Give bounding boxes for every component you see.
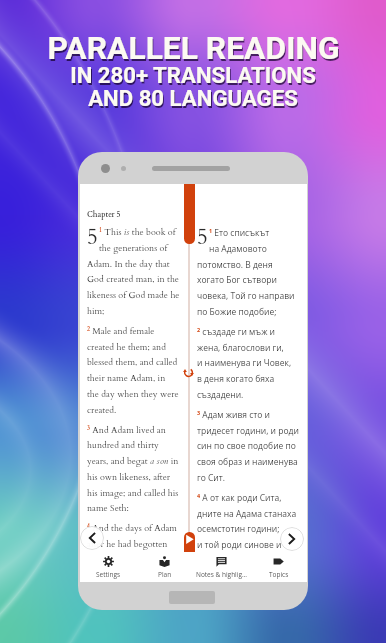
staticText: years, and begat a son in [87,455,179,467]
staticText: Adam. In the day that [87,258,170,270]
staticText: after he had begotten [87,538,168,550]
staticText: Topics [269,570,289,579]
staticText: човека, Той го направи [197,290,295,302]
staticText: и наименува ги Човек, [197,357,292,369]
staticText: Settings [96,570,121,579]
staticText: IN 280+ TRANSLATIONS [71,64,317,90]
staticText: his image; and called his [87,487,179,499]
staticText: his own likeness, after [87,471,171,483]
button[interactable]: Plan [136,552,193,582]
staticText: син по свое подобие по [197,440,296,452]
staticText: 1 This is the book of [99,226,176,238]
button[interactable]: Notes & highlig... [193,552,250,582]
staticText: 3 Адам живя сто и [197,409,270,421]
staticText: 5 [197,223,208,251]
button[interactable]: Next translation [184,532,195,553]
staticText: likeness of God made he [87,289,180,301]
staticText: 4 А от как роди Сита, [197,492,282,504]
button[interactable]: Settings [80,552,136,582]
staticText: по Божие подобие; [197,306,277,318]
staticText: осемстотин години; [197,523,280,535]
staticText: PARALLEL READING [48,31,341,68]
staticText: the generations of [99,242,168,254]
staticText: в деня когато бяха [197,373,275,385]
staticText: God created man, in the [87,273,179,285]
staticText: 4 And the days of Adam [87,522,177,534]
staticText: the day when they were [87,388,179,400]
staticText: PARALLEL READING [47,29,340,66]
staticText: 2 създаде ги мъж и [197,326,276,338]
staticText: дните на Адама станаха [197,508,297,520]
staticText: своя образ и наименува [197,456,298,468]
staticText: created he them; and [87,341,166,353]
staticText: hundred and thirty [87,439,159,451]
staticText: Notes & highlig... [196,570,248,579]
staticText: AND 80 LANGUAGES [89,87,299,113]
button[interactable]: Previous chapter [80,526,104,550]
staticText: Plan [158,570,172,579]
staticText: жена, благослови ги, [197,342,284,354]
staticText: blessed them, and called [87,356,178,368]
staticText: създадени. [197,389,244,401]
staticText: AND 80 LANGUAGES [88,85,298,111]
staticText: IN 280+ TRANSLATIONS [70,62,316,88]
staticText: him; [87,305,105,317]
staticText: 1 Ето списъкът [209,227,270,239]
staticText: their name Adam, in [87,372,166,384]
staticText: тридесет години, и роди [197,425,299,437]
staticText: хогато Бог сътвори [197,274,277,286]
staticText: 5 [87,223,98,251]
staticText: Chapter 5 [87,210,121,220]
button[interactable]: Topics [250,552,307,582]
staticText: го Сит. [197,472,225,484]
staticText: name Seth: [87,502,129,514]
staticText: created. [87,404,117,416]
staticText: и той роди синове и [197,539,282,551]
button[interactable]: Next chapter [280,527,304,551]
staticText: 3 And Adam lived an [87,424,166,436]
staticText: потомство. В деня [197,259,273,271]
staticText: на Адамовото [209,243,267,255]
button[interactable]: KJV+Strong's translation [184,184,195,244]
staticText: 2 Male and female [87,325,155,337]
